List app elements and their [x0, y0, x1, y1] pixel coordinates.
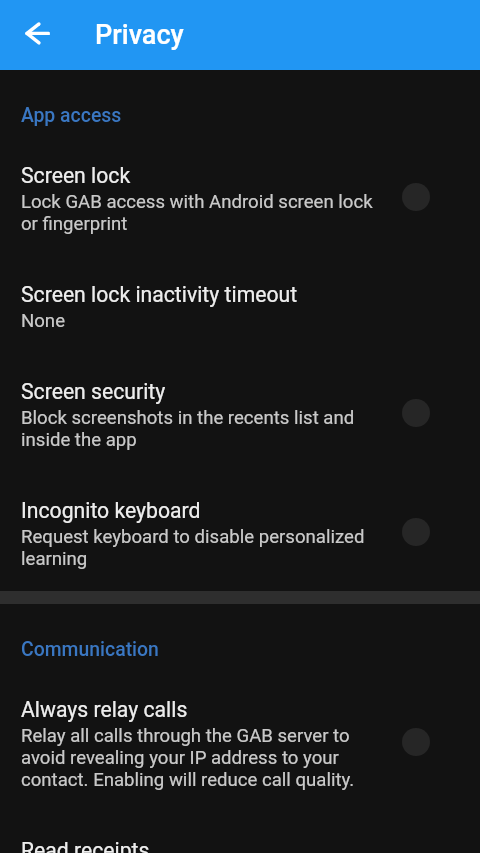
button[interactable]: Incognito keyboard: [0, 498, 480, 570]
staticText: Communication: [21, 638, 159, 661]
button[interactable]: Always relay calls: [0, 697, 480, 791]
staticText: Relay all calls through the GAB server t…: [21, 725, 384, 791]
staticText: Privacy: [95, 19, 184, 51]
staticText: Read receipts: [21, 838, 150, 853]
staticText: Incognito keyboard: [21, 498, 201, 523]
staticText: Block screenshots in the recents list an…: [21, 407, 384, 451]
staticText: Lock GAB access with Android screen lock…: [21, 191, 384, 235]
button[interactable]: Back: [4, 12, 50, 58]
button[interactable]: Screen security: [0, 379, 480, 451]
staticText: Screen security: [21, 379, 166, 404]
staticText: Screen lock inactivity timeout: [21, 282, 298, 307]
button[interactable]: Read receipts: [0, 838, 480, 853]
button[interactable]: Screen lock inactivity timeout: [0, 282, 480, 332]
button[interactable]: Screen lock: [0, 163, 480, 235]
staticText: Request keyboard to disable personalized…: [21, 526, 384, 570]
staticText: App access: [21, 104, 122, 127]
staticText: Screen lock: [21, 163, 131, 188]
staticText: None: [21, 310, 65, 332]
staticText: Always relay calls: [21, 697, 188, 722]
